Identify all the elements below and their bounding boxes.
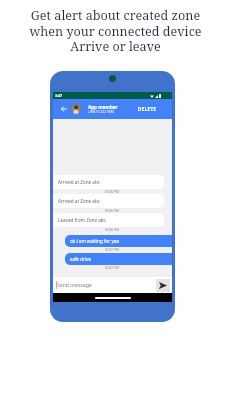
staticText: ok i am waiting for you: [70, 238, 120, 244]
button[interactable]: Leaved from Zone abc: [53, 213, 164, 227]
staticText: safe drive: [70, 256, 91, 262]
staticText: Get alert about created zone when your c…: [29, 7, 202, 55]
staticText: 03:45 PM: [105, 190, 119, 194]
staticText: Send message: [57, 282, 156, 289]
staticText: Arrived at Zone abc: [58, 198, 100, 204]
staticText: DELETE: [138, 106, 157, 112]
staticText: 03:45 PM: [105, 209, 119, 213]
button[interactable]: safe drive: [65, 253, 172, 265]
staticText: Arrived at Zone abc: [58, 179, 100, 185]
button[interactable]: DELETE: [134, 101, 161, 117]
staticText: 3:47: [55, 93, 63, 98]
staticText: 03:47 PM: [105, 266, 119, 270]
staticText: +966 11 222 3333: [88, 110, 115, 114]
staticText: 03:46 PM: [105, 228, 119, 232]
button[interactable]: Send: [156, 279, 170, 292]
staticText: App member: [88, 104, 118, 110]
button[interactable]: Arrived at Zone abc: [53, 194, 164, 208]
button[interactable]: Arrived at Zone abc: [53, 175, 164, 189]
staticText: 03:47 PM: [105, 248, 119, 252]
button[interactable]: Back: [58, 99, 70, 119]
staticText: Leaved from Zone abc: [58, 217, 106, 223]
button[interactable]: ok i am waiting for you: [65, 235, 172, 247]
